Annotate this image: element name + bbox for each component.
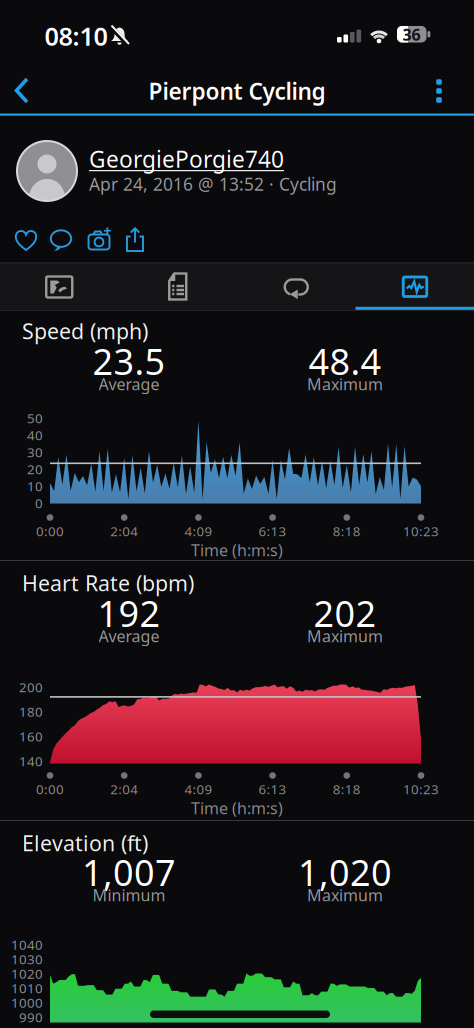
staticText: Maximum — [307, 625, 383, 647]
staticText: 6:13 — [259, 780, 287, 798]
staticText: Speed (mph) — [22, 317, 148, 345]
button[interactable]: Comment — [44, 223, 78, 257]
staticText: 6:13 — [259, 522, 287, 540]
staticText: 160 — [19, 727, 43, 745]
button[interactable]: Details — [118, 263, 237, 310]
staticText: 50 — [27, 409, 43, 427]
staticText: 8:18 — [333, 780, 361, 798]
staticText: 180 — [19, 703, 43, 720]
staticText: 2:04 — [110, 522, 138, 540]
staticText: 1020 — [11, 965, 43, 982]
button[interactable]: Back — [0, 68, 44, 112]
staticText: 08:10 — [44, 19, 107, 53]
staticText: 202 — [313, 589, 376, 637]
staticText: 4:09 — [184, 522, 212, 540]
staticText: 200 — [19, 678, 43, 696]
staticText: Elevation (ft) — [22, 829, 148, 857]
staticText: GeorgiePorgie740 — [89, 144, 284, 174]
button[interactable]: Charts — [355, 263, 474, 310]
staticText: 1,007 — [82, 848, 176, 896]
staticText: Time (h:m:s) — [191, 797, 283, 819]
staticText: 192 — [97, 589, 160, 637]
button[interactable]: Add photo — [82, 223, 116, 257]
staticText: 20 — [27, 460, 43, 478]
button[interactable]: Snapshot — [0, 263, 118, 310]
staticText: 36 — [402, 24, 420, 45]
staticText: 1000 — [11, 994, 43, 1011]
button[interactable]: Profile — [17, 141, 77, 201]
staticText: 23.5 — [92, 337, 165, 385]
staticText: 30 — [27, 443, 43, 461]
staticText: Apr 24, 2016 @ 13:52 · Cycling — [89, 172, 337, 195]
staticText: 8:18 — [333, 522, 361, 540]
staticText: 990 — [19, 1008, 43, 1026]
staticText: 4:09 — [184, 780, 212, 798]
staticText: Average — [98, 625, 159, 647]
staticText: 1,020 — [298, 848, 392, 896]
staticText: Maximum — [307, 373, 383, 395]
staticText: Minimum — [92, 884, 165, 906]
staticText: Average — [98, 373, 159, 395]
staticText: 140 — [19, 752, 43, 770]
staticText: 40 — [27, 426, 43, 444]
staticText: 48.4 — [308, 337, 381, 385]
staticText: 0:00 — [36, 522, 64, 540]
staticText: Maximum — [307, 884, 383, 906]
button[interactable]: GeorgiePorgie740 — [89, 144, 284, 174]
button[interactable]: More options — [417, 69, 461, 113]
staticText: Pierpont Cycling — [148, 76, 325, 106]
staticText: 10 — [27, 477, 43, 495]
staticText: 10:23 — [403, 780, 439, 798]
button[interactable]: Like — [9, 223, 43, 257]
staticText: 1040 — [11, 936, 43, 953]
button[interactable]: Share — [118, 223, 152, 257]
staticText: 1010 — [11, 979, 43, 997]
staticText: 10:23 — [403, 522, 439, 540]
staticText: 2:04 — [110, 780, 138, 798]
staticText: Heart Rate (bpm) — [22, 569, 194, 597]
staticText: 0:00 — [36, 780, 64, 798]
button[interactable]: Laps — [237, 263, 355, 310]
staticText: 1030 — [11, 950, 43, 968]
staticText: 0 — [35, 494, 43, 512]
staticText: Time (h:m:s) — [191, 539, 283, 561]
